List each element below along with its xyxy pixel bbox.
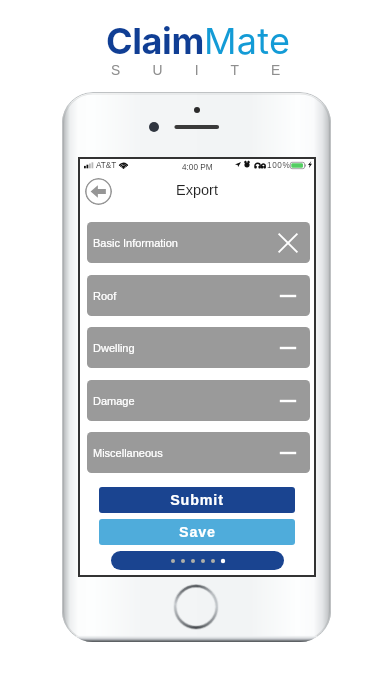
staticText: Export [176, 182, 218, 198]
staticText: Save [179, 524, 216, 540]
button[interactable]: Save [99, 519, 295, 545]
button[interactable]: Basic Information [87, 222, 310, 263]
staticText: 4:00 PM [182, 163, 213, 172]
button[interactable]: Back [85, 178, 112, 205]
button[interactable]: Miscellaneous [87, 432, 310, 473]
staticText: Mate [204, 19, 291, 63]
staticText: Damage [93, 395, 135, 407]
button[interactable]: Dwelling [87, 327, 310, 368]
button[interactable]: Page indicator [111, 551, 284, 570]
staticText: Miscellaneous [93, 447, 163, 459]
staticText: Submit [170, 492, 224, 508]
button[interactable]: Damage [87, 380, 310, 421]
button[interactable]: Submit [99, 487, 295, 513]
staticText: Dwelling [93, 342, 135, 354]
staticText: Roof [93, 290, 117, 302]
staticText: AT&T [96, 161, 117, 170]
staticText: Claim [106, 19, 204, 63]
staticText: 100% [267, 161, 291, 170]
staticText: Basic Information [93, 237, 178, 249]
button[interactable]: Roof [87, 275, 310, 316]
staticText: S U I T E [111, 63, 289, 78]
